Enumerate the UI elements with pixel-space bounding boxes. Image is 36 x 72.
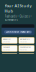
button[interactable]: Calculus II [2,45,17,52]
button[interactable]: Biology 101 [2,37,17,44]
button[interactable]: Art History [19,53,34,60]
button[interactable]: Spanish Verbs [19,45,34,52]
staticText: 24 cards [3,41,10,43]
staticText: Biology 101 [3,38,11,40]
staticText: Calculus II [3,46,9,48]
staticText: Flashcards • Quizzes • Summaries [4,15,31,22]
staticText: 32 cards [3,49,10,51]
button[interactable]: Organic Chem [2,53,17,60]
staticText: Spanish Verbs [20,46,31,48]
button[interactable]: World History [19,37,34,44]
staticText: 18 cards [20,41,27,43]
staticText: Generate New Set [5,30,30,34]
staticText: 40 cards [20,49,27,51]
staticText: World History [20,38,30,40]
button[interactable]: Generate New Set [4,30,32,34]
staticText: Your AI Study Hub [4,3,31,14]
